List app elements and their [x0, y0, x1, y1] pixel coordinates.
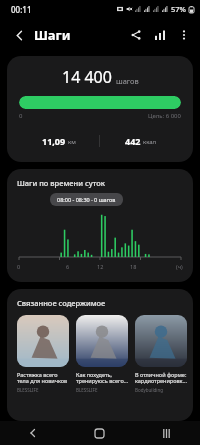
- staticText: 0: [17, 263, 21, 270]
- staticText: 442: [125, 135, 141, 147]
- staticText: Шаги по времени суток: [17, 178, 105, 188]
- staticText: Шаги: [34, 26, 71, 44]
- staticText: 6: [66, 263, 70, 270]
- button[interactable]: Home: [66, 421, 133, 445]
- staticText: 57%: [171, 4, 186, 14]
- staticText: 18: [130, 263, 137, 270]
- staticText: км: [68, 138, 76, 146]
- staticText: BLESSLIFE: [17, 387, 39, 393]
- staticText: Bodybuilding: [135, 387, 164, 393]
- staticText: Связанное содержимое: [17, 298, 106, 308]
- staticText: ккал: [143, 138, 157, 146]
- staticText: 00:11: [11, 4, 32, 15]
- staticText: Цель: 6 000: [148, 112, 181, 120]
- button[interactable]: Back: [6, 22, 32, 48]
- staticText: BLESSLIFE: [76, 387, 98, 393]
- button[interactable]: Share: [124, 23, 148, 47]
- staticText: (ч): [176, 263, 183, 270]
- button[interactable]: Back: [0, 421, 66, 445]
- button[interactable]: Recent apps: [133, 421, 200, 445]
- button[interactable]: 14 400: [7, 56, 193, 162]
- staticText: шагов: [116, 76, 139, 86]
- button[interactable]: Как похудеть, тренируюсь всего ...: [76, 315, 128, 393]
- staticText: 08:00 - 08:30 · 0 шагов: [57, 196, 116, 203]
- staticText: 14 400: [62, 66, 112, 88]
- staticText: Как похудеть, тренируюсь всего ...: [76, 371, 128, 385]
- button[interactable]: Statistics: [148, 23, 172, 47]
- staticText: Растяжка всего тела для новичков: [17, 371, 68, 385]
- button[interactable]: В отличной форме: кардиотренировк...: [135, 315, 187, 393]
- button[interactable]: Растяжка всего тела для новичков: [17, 315, 69, 393]
- button[interactable]: More options: [172, 23, 196, 47]
- staticText: 0: [19, 112, 23, 120]
- button[interactable]: Шаги по времени суток: [7, 169, 193, 282]
- staticText: 12: [97, 263, 104, 270]
- staticText: 11,09: [42, 135, 66, 147]
- staticText: В отличной форме: кардиотренировк...: [135, 371, 187, 385]
